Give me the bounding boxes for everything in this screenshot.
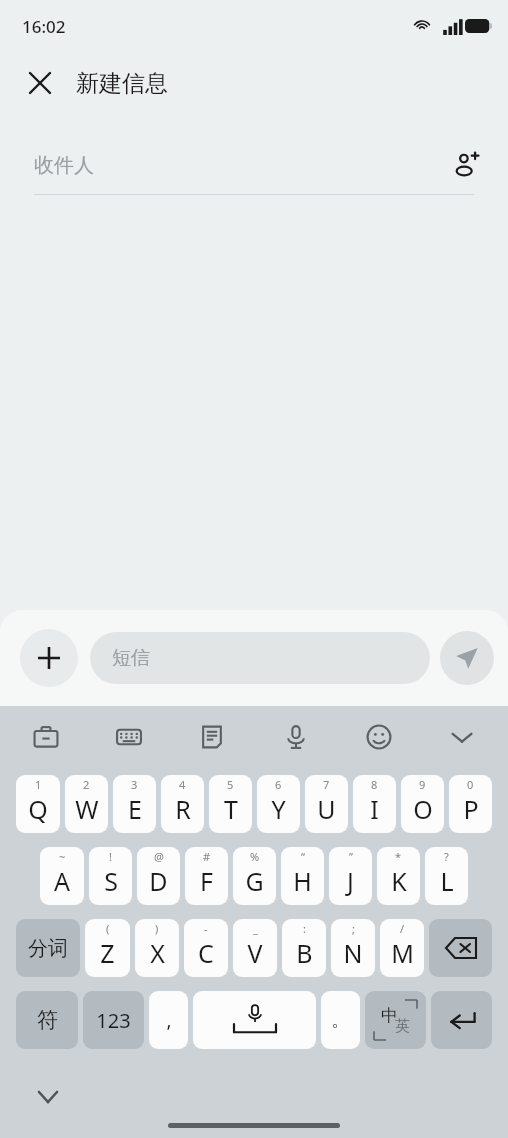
staticText: L — [440, 864, 454, 898]
button[interactable]: Emoji — [357, 715, 401, 759]
staticText: Z — [100, 936, 115, 970]
staticText: 英 — [395, 1017, 410, 1036]
staticText: H — [293, 864, 312, 898]
staticText: 收件人 — [34, 153, 94, 178]
button[interactable]: % — [233, 847, 276, 905]
button[interactable]: 。 — [321, 991, 360, 1049]
button[interactable]: Clipboard — [190, 715, 234, 759]
staticText: : — [303, 921, 306, 936]
button[interactable]: Hide keyboard — [440, 715, 484, 759]
staticText: 7 — [323, 777, 330, 792]
button[interactable]: 123 — [83, 991, 144, 1049]
button[interactable]: ( — [85, 919, 130, 977]
staticText: @ — [154, 849, 164, 864]
staticText: ) — [155, 921, 159, 936]
staticText: W — [75, 792, 99, 826]
staticText: C — [198, 936, 214, 970]
button[interactable]: Keyboard layout — [107, 715, 151, 759]
button[interactable]: 1 — [16, 775, 60, 833]
button[interactable]: Add contact — [446, 145, 486, 185]
staticText: S — [104, 864, 118, 898]
staticText: F — [200, 864, 213, 898]
staticText: V — [247, 936, 263, 970]
button[interactable]: * — [377, 847, 420, 905]
button[interactable]: 9 — [401, 775, 444, 833]
button[interactable]: @ — [137, 847, 180, 905]
staticText: % — [250, 849, 260, 864]
button[interactable]: _ — [233, 919, 277, 977]
button[interactable]: 短信 — [90, 632, 430, 684]
staticText: ~ — [59, 849, 66, 864]
staticText: D — [149, 864, 168, 898]
button[interactable]: ) — [135, 919, 179, 977]
staticText: - — [204, 921, 208, 936]
staticText: 6 — [275, 777, 282, 792]
button[interactable]: Switch Chinese English — [365, 991, 426, 1049]
staticText: 16:02 — [22, 15, 66, 38]
staticText: X — [150, 936, 165, 970]
button[interactable]: ; — [331, 919, 375, 977]
button[interactable]: Tools — [24, 715, 68, 759]
button[interactable]: ~ — [40, 847, 84, 905]
staticText: T — [224, 792, 238, 826]
staticText: I — [370, 792, 379, 826]
staticText: J — [347, 864, 354, 898]
staticText: Y — [271, 792, 286, 826]
button[interactable]: Add attachment — [20, 629, 78, 687]
staticText: ” — [349, 849, 353, 864]
staticText: 1 — [35, 777, 42, 792]
staticText: 新建信息 — [76, 69, 168, 98]
button[interactable]: / — [380, 919, 424, 977]
staticText: 分词 — [28, 936, 68, 961]
button[interactable]: Voice input — [274, 715, 318, 759]
staticText: M — [391, 936, 414, 970]
staticText: 8 — [371, 777, 378, 792]
staticText: 。 — [331, 1008, 350, 1032]
staticText: ! — [109, 849, 112, 864]
button[interactable]: 7 — [305, 775, 348, 833]
button[interactable]: , — [149, 991, 188, 1049]
button[interactable]: Close — [20, 63, 60, 103]
button[interactable]: 2 — [65, 775, 108, 833]
staticText: ; — [352, 921, 355, 936]
staticText: # — [203, 849, 211, 864]
staticText: 2 — [83, 777, 90, 792]
button[interactable]: - — [184, 919, 228, 977]
button[interactable]: # — [185, 847, 228, 905]
button[interactable]: 6 — [257, 775, 300, 833]
staticText: _ — [253, 921, 258, 936]
button[interactable]: 符 — [16, 991, 78, 1049]
staticText: B — [296, 936, 313, 970]
staticText: N — [343, 936, 363, 970]
staticText: E — [128, 792, 142, 826]
button[interactable]: 4 — [161, 775, 204, 833]
button[interactable]: ” — [329, 847, 372, 905]
staticText: Q — [28, 792, 48, 826]
button[interactable]: : — [282, 919, 326, 977]
staticText: R — [175, 792, 191, 826]
button[interactable]: ? — [425, 847, 468, 905]
button[interactable]: 8 — [353, 775, 396, 833]
staticText: 3 — [131, 777, 138, 792]
button[interactable]: 0 — [449, 775, 492, 833]
button[interactable]: Send — [440, 631, 494, 685]
staticText: 4 — [179, 777, 186, 792]
button[interactable]: Space — [193, 991, 316, 1049]
staticText: K — [391, 864, 407, 898]
button[interactable]: ! — [89, 847, 132, 905]
staticText: 符 — [37, 1007, 58, 1033]
staticText: A — [54, 864, 70, 898]
staticText: * — [395, 849, 402, 864]
button[interactable]: Enter — [431, 991, 492, 1049]
staticText: 123 — [96, 1007, 131, 1034]
button[interactable]: “ — [281, 847, 324, 905]
button[interactable]: 5 — [209, 775, 252, 833]
staticText: ( — [106, 921, 110, 936]
staticText: 中 — [381, 1005, 398, 1026]
staticText: ? — [444, 849, 449, 864]
button[interactable]: Backspace — [429, 919, 492, 977]
staticText: G — [245, 864, 264, 898]
button[interactable]: 3 — [113, 775, 156, 833]
button[interactable]: 分词 — [16, 919, 80, 977]
button[interactable]: Collapse keyboard — [30, 1079, 66, 1115]
